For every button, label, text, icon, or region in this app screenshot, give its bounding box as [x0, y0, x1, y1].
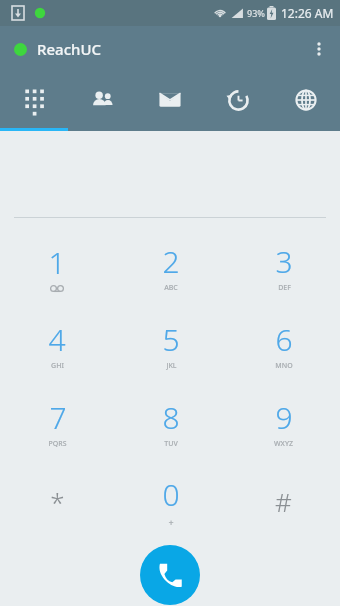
button[interactable]: 1 — [0, 228, 114, 306]
staticText: 1 — [48, 242, 66, 283]
button[interactable]: * — [0, 462, 114, 540]
button[interactable]: Dialpad — [0, 72, 68, 128]
button[interactable]: 6 — [227, 306, 340, 384]
staticText: DEF — [278, 283, 291, 293]
staticText: ABC — [164, 283, 178, 293]
button[interactable]: 2 — [114, 228, 227, 306]
button[interactable]: Contacts — [68, 72, 136, 128]
button[interactable]: History — [204, 72, 272, 128]
button[interactable]: 8 — [114, 384, 227, 462]
button[interactable]: More options — [298, 28, 340, 70]
staticText: 93% — [247, 7, 265, 19]
button[interactable]: 4 — [0, 306, 114, 384]
staticText: 8 — [162, 397, 180, 438]
staticText: 7 — [49, 397, 67, 438]
button[interactable]: Web — [272, 72, 340, 128]
staticText: ReachUC — [37, 39, 102, 59]
button[interactable]: Messages — [136, 72, 204, 128]
staticText: 12:26 AM — [281, 5, 334, 21]
button[interactable]: 7 — [0, 384, 114, 462]
staticText: * — [50, 484, 65, 519]
staticText: 2 — [162, 241, 180, 282]
staticText: MNO — [275, 361, 293, 371]
button[interactable]: 0 — [114, 462, 227, 540]
staticText: 0 — [162, 474, 180, 515]
button[interactable]: 3 — [227, 228, 340, 306]
button[interactable]: Call — [140, 545, 200, 605]
staticText: JKL — [166, 361, 177, 371]
staticText: + — [168, 516, 174, 528]
staticText: 9 — [275, 397, 293, 438]
staticText: # — [275, 484, 292, 519]
staticText: 3 — [275, 241, 293, 282]
staticText: PQRS — [48, 439, 67, 449]
staticText: WXYZ — [274, 439, 293, 449]
staticText: GHI — [51, 361, 64, 371]
staticText: 6 — [275, 319, 293, 360]
staticText: TUV — [164, 439, 178, 449]
button[interactable]: 5 — [114, 306, 227, 384]
button[interactable]: 9 — [227, 384, 340, 462]
staticText: 4 — [48, 319, 66, 360]
button[interactable]: # — [227, 462, 340, 540]
staticText: 5 — [162, 319, 180, 360]
